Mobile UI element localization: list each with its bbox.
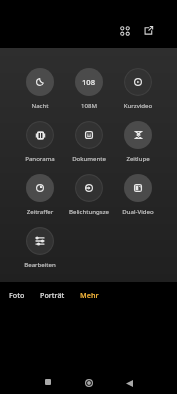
button[interactable]: Belichtungsze [62,174,116,215]
staticText: Zeitraffer [13,207,67,215]
button[interactable]: Bearbeiten [13,227,67,268]
button[interactable]: Nacht [13,68,67,109]
staticText: Foto [9,290,25,300]
staticText: Belichtungsze [62,207,116,215]
button[interactable]: Recents [37,371,59,393]
staticText: Dual-Video [111,207,165,215]
button[interactable]: Mehr [67,285,111,305]
staticText: Dokumente [62,154,116,162]
button[interactable]: Back [118,372,140,394]
button[interactable]: Edit modes [136,18,160,42]
staticText: Zeitlupe [111,154,165,162]
staticText: Porträt [40,290,65,300]
button[interactable]: Panorama [13,121,67,162]
staticText: 108M [62,101,116,109]
staticText: Bearbeiten [13,260,67,268]
button[interactable]: Home [78,372,100,394]
button[interactable]: Dokumente [62,121,116,162]
button[interactable]: Zeitlupe [111,121,165,162]
button[interactable]: Foto [0,285,39,305]
button[interactable]: Camera modes [113,19,137,43]
button[interactable]: Kurzvideo [111,68,165,109]
staticText: Panorama [13,154,67,162]
staticText: Kurzvideo [111,101,165,109]
button[interactable]: Porträt [30,285,74,305]
button[interactable]: 108 [62,68,116,109]
staticText: Mehr [80,290,99,300]
staticText: Nacht [13,101,67,109]
staticText: 108 [82,77,96,87]
button[interactable]: Dual-Video [111,174,165,215]
button[interactable]: Zeitraffer [13,174,67,215]
